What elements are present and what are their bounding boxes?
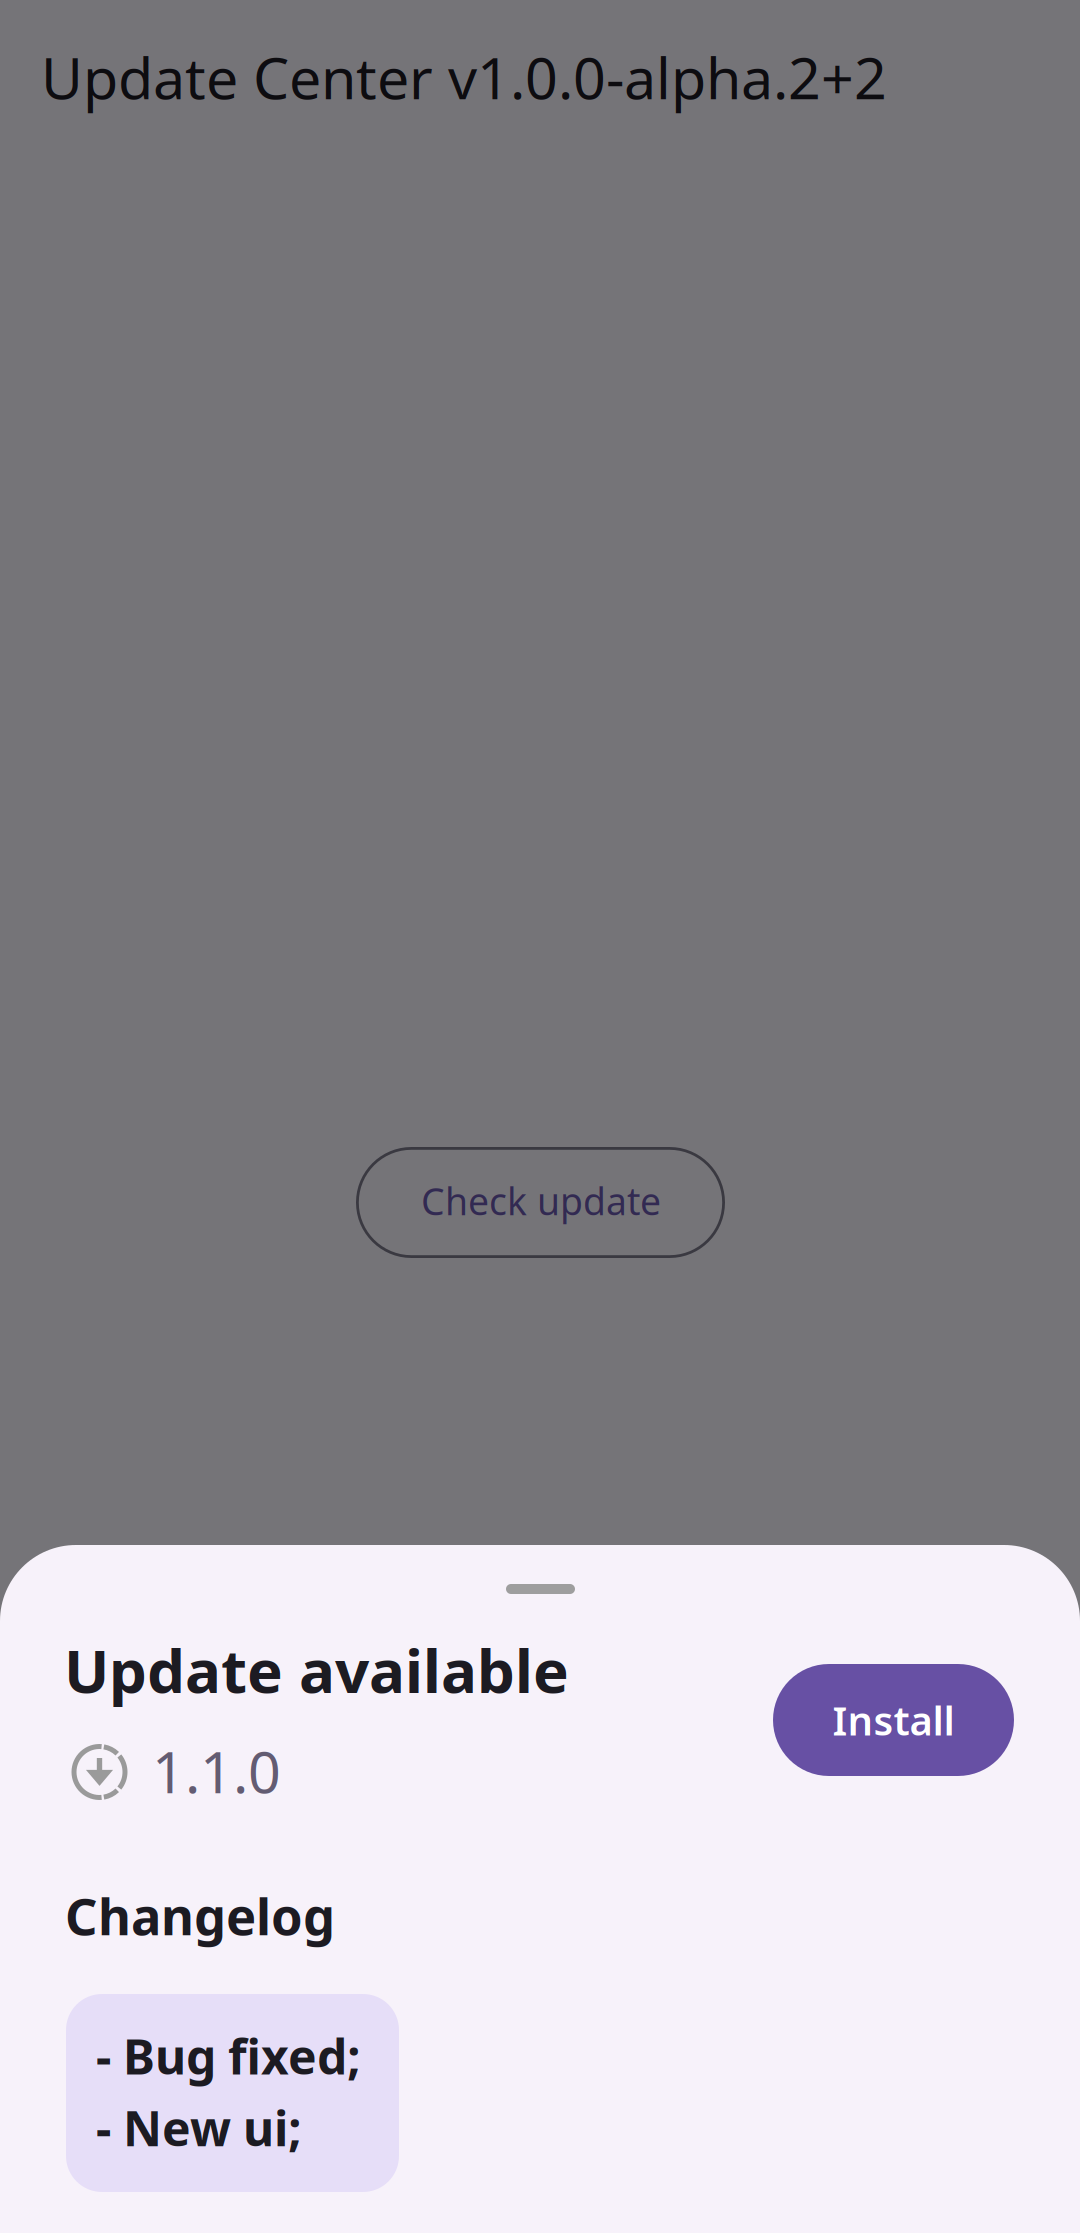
button[interactable]: Install	[773, 1664, 1014, 1776]
staticText: Check update	[421, 1176, 661, 1226]
button[interactable]: Check update	[356, 1147, 725, 1258]
staticText: Update Center v1.0.0-alpha.2+2	[41, 39, 887, 115]
staticText: - New ui;	[96, 2096, 302, 2159]
staticText: Install	[832, 1693, 954, 1746]
staticText: Changelog	[65, 1882, 335, 1949]
staticText: 1.1.0	[152, 1733, 281, 1809]
staticText: - Bug fixed;	[96, 2024, 361, 2088]
staticText: Update available	[64, 1630, 569, 1710]
